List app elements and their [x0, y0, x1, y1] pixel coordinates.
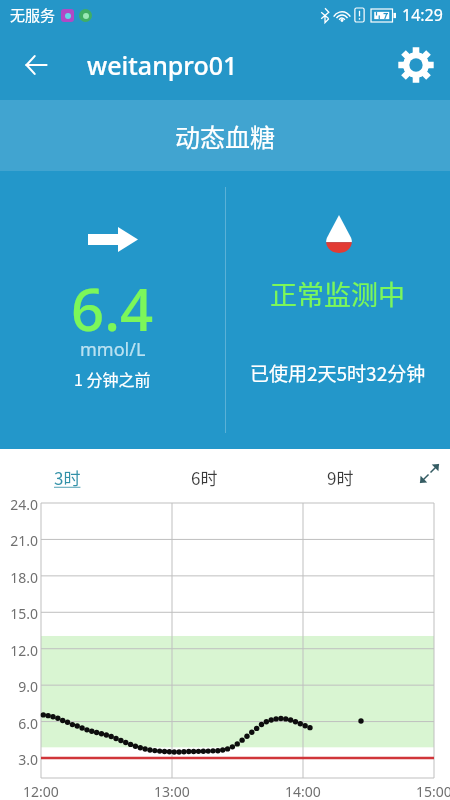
- staticText: 12.0: [10, 641, 38, 660]
- staticText: 1 分钟之前: [74, 367, 151, 390]
- staticText: 13:00: [154, 782, 190, 800]
- staticText: 21.0: [10, 531, 38, 550]
- staticText: 已使用2天5时32分钟: [250, 359, 426, 387]
- button[interactable]: Back: [14, 43, 58, 87]
- button[interactable]: 9时: [327, 465, 354, 490]
- staticText: 14:00: [285, 782, 321, 800]
- staticText: 正常监测中: [270, 274, 405, 313]
- staticText: 无服务: [10, 4, 56, 26]
- button[interactable]: 3时: [54, 465, 81, 490]
- staticText: 15.0: [10, 604, 38, 623]
- staticText: 9.0: [18, 677, 38, 696]
- button[interactable]: Fullscreen: [413, 457, 445, 489]
- button[interactable]: 6时: [191, 465, 218, 490]
- staticText: 动态血糖: [175, 118, 276, 154]
- button[interactable]: Settings: [392, 41, 440, 89]
- staticText: 24.0: [10, 495, 38, 514]
- staticText: 18.0: [10, 568, 38, 587]
- staticText: 6时: [191, 465, 218, 490]
- staticText: 14:29: [402, 4, 443, 26]
- staticText: 3时: [54, 465, 81, 490]
- staticText: weitanpro01: [87, 48, 238, 82]
- staticText: 12:00: [23, 782, 59, 800]
- staticText: 6.4: [71, 269, 154, 348]
- staticText: 15:00: [416, 782, 450, 800]
- staticText: 9时: [327, 465, 354, 490]
- staticText: 3.0: [18, 750, 38, 769]
- staticText: 6.0: [18, 714, 38, 733]
- staticText: mmol/L: [80, 337, 146, 362]
